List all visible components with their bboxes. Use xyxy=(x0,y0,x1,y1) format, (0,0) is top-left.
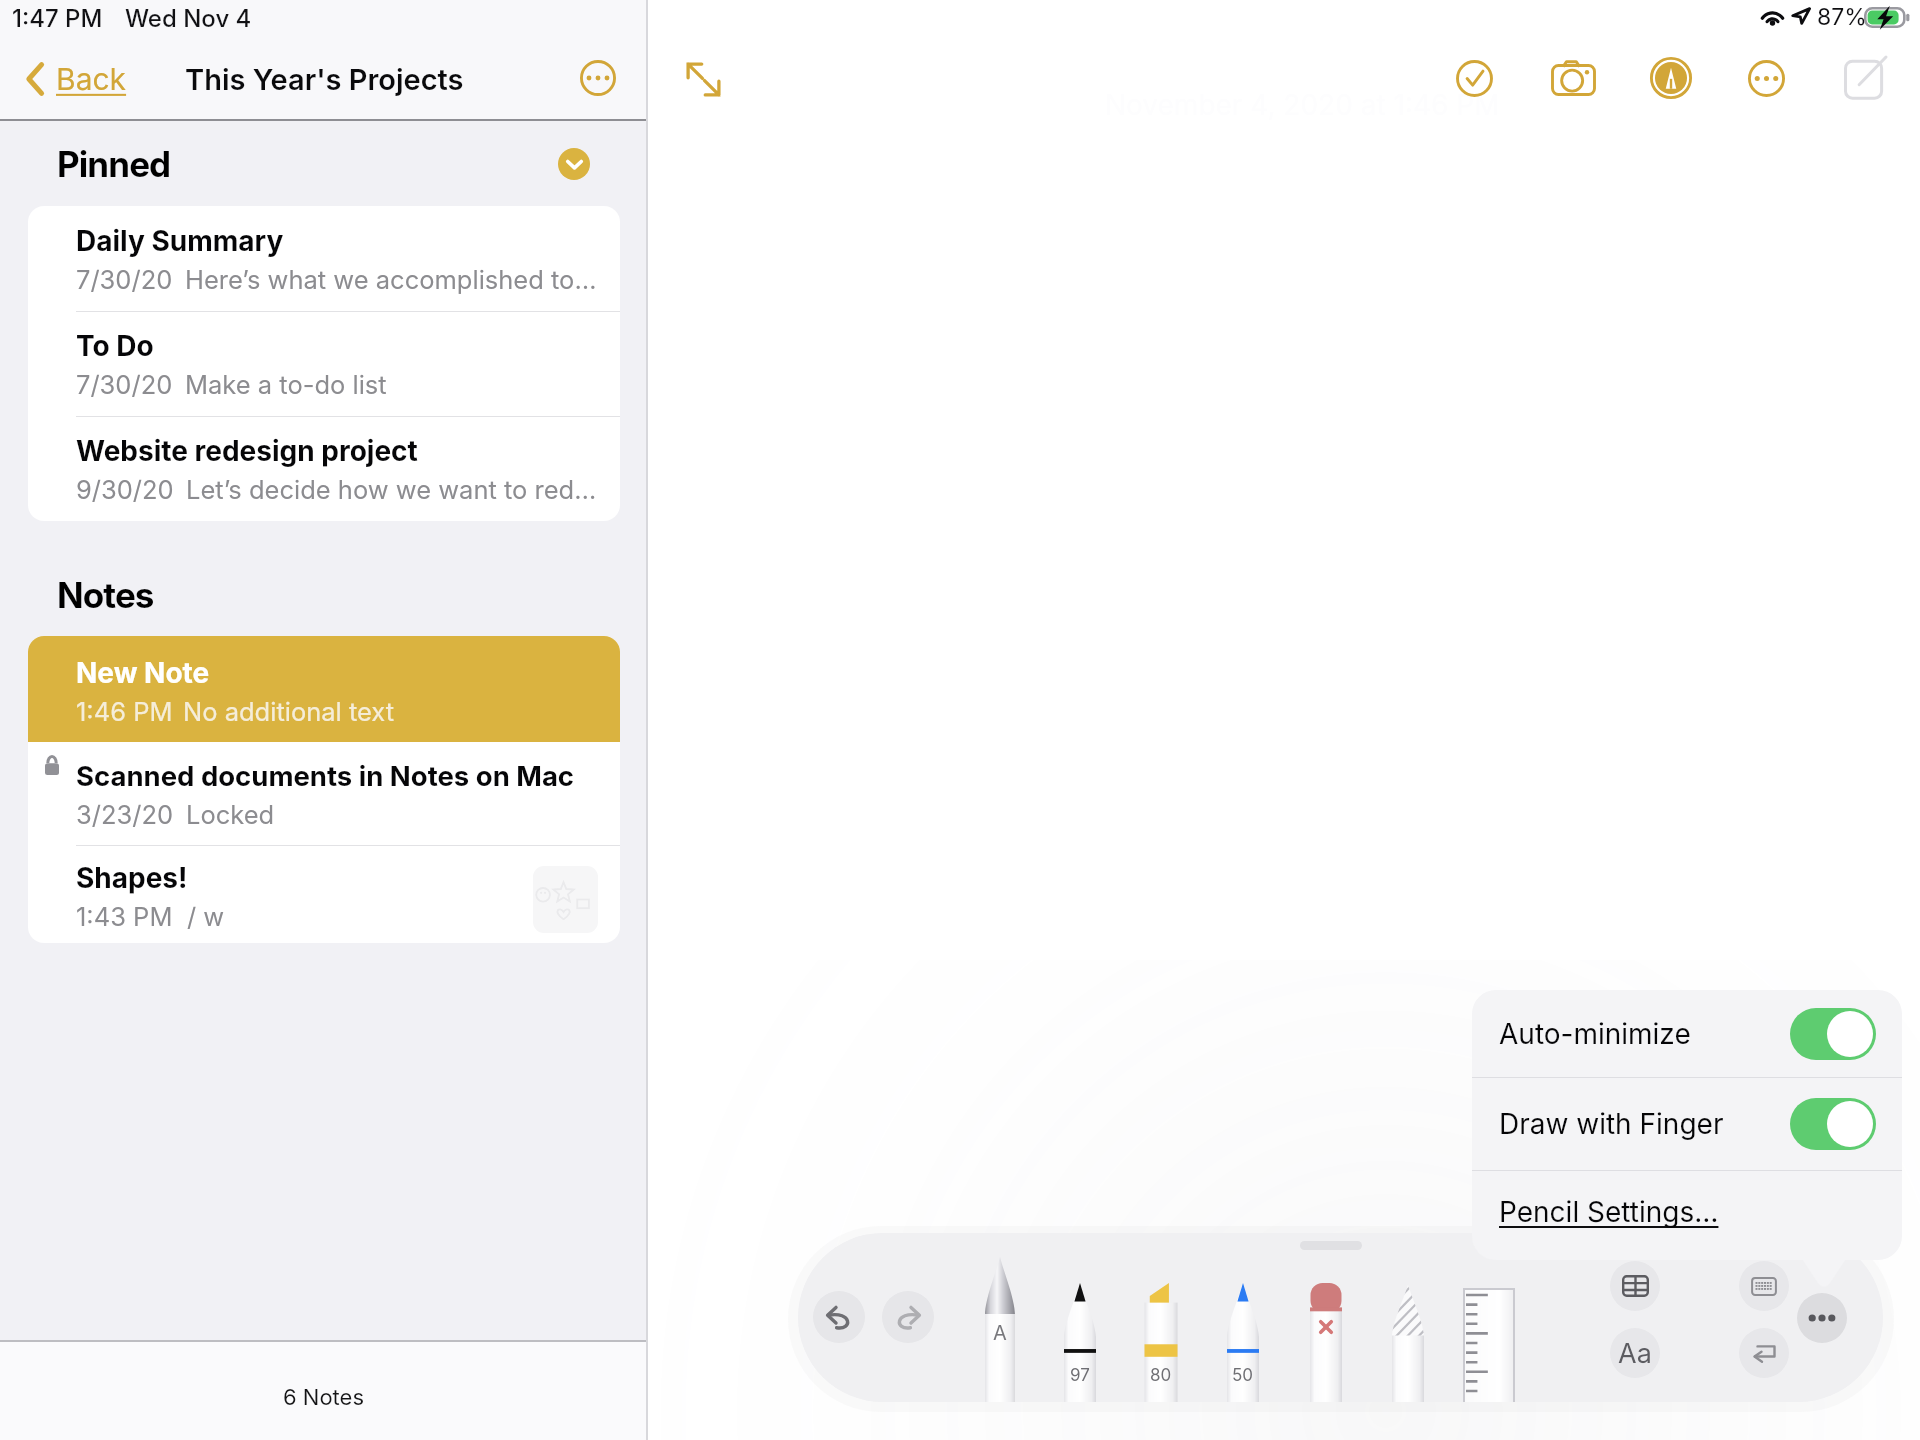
staticText: 6 Notes xyxy=(283,1384,365,1411)
staticText: This Year's Projects xyxy=(185,62,464,97)
button[interactable]: Pencil tool xyxy=(977,1257,1023,1402)
button[interactable]: Undo xyxy=(813,1291,865,1343)
staticText: 7/30/20 xyxy=(76,264,173,295)
staticText: 9/30/20 xyxy=(76,474,174,505)
staticText: 1:46 PM xyxy=(76,696,173,727)
staticText: 3/23/20 xyxy=(76,799,174,830)
staticText: / w xyxy=(187,901,225,932)
staticText: Website redesign project xyxy=(76,434,418,468)
staticText: Let’s decide how we want to red… xyxy=(186,474,597,505)
staticText: 1:43 PM xyxy=(76,901,173,932)
button[interactable]: Website redesign project xyxy=(28,416,620,521)
button[interactable]: New Note xyxy=(28,636,620,742)
staticText: November 4, 2020 at 1:46 PM xyxy=(1105,88,1500,122)
staticText: 97 xyxy=(1070,1365,1090,1386)
staticText: Draw with Finger xyxy=(1499,1107,1724,1141)
button[interactable]: Pen tool xyxy=(1057,1283,1103,1402)
staticText: Make a to-do list xyxy=(185,369,387,400)
staticText: Wed Nov 4 xyxy=(125,4,252,33)
staticText: A xyxy=(993,1321,1007,1345)
button[interactable]: Highlighter tool xyxy=(1138,1283,1184,1402)
button[interactable]: Keyboard xyxy=(1739,1261,1789,1311)
staticText: 1:47 PM xyxy=(12,4,103,33)
staticText: 80 xyxy=(1150,1365,1172,1386)
staticText: New Note xyxy=(76,656,210,690)
button[interactable]: Daily Summary xyxy=(28,206,620,311)
button[interactable]: Insert xyxy=(1739,1328,1789,1378)
button[interactable]: Table xyxy=(1610,1261,1660,1311)
staticText: Locked xyxy=(186,799,275,830)
button[interactable]: Compose xyxy=(1835,48,1895,108)
button[interactable]: Text style xyxy=(1610,1328,1660,1378)
button[interactable]: Back xyxy=(24,54,127,104)
staticText: Shapes! xyxy=(76,861,188,895)
button[interactable]: Camera xyxy=(1543,48,1603,108)
button[interactable]: Lasso tool xyxy=(1385,1285,1431,1402)
button[interactable]: More options xyxy=(574,54,622,102)
button[interactable]: Markup xyxy=(1641,48,1701,108)
staticText: To Do xyxy=(76,329,154,363)
staticText: Back xyxy=(56,61,127,97)
staticText: Pinned xyxy=(57,143,171,185)
button[interactable]: Pencil Settings… xyxy=(1472,1170,1902,1260)
button[interactable]: Shapes! xyxy=(28,845,620,943)
button[interactable]: Collapse Pinned xyxy=(558,148,590,180)
button[interactable]: To Do xyxy=(28,311,620,416)
staticText: Aa xyxy=(1618,1337,1652,1370)
button[interactable]: Draw with Finger xyxy=(1472,1077,1902,1170)
staticText: Scanned documents in Notes on Mac xyxy=(76,759,575,792)
button[interactable]: More xyxy=(1736,48,1796,108)
staticText: No additional text xyxy=(183,696,395,727)
staticText: 50 xyxy=(1232,1365,1254,1386)
staticText: Auto-minimize xyxy=(1499,1017,1691,1051)
button[interactable]: Eraser tool xyxy=(1303,1283,1349,1402)
button[interactable]: Markup options xyxy=(1797,1293,1847,1343)
staticText: Notes xyxy=(57,574,154,616)
staticText: Here’s what we accomplished to… xyxy=(185,264,597,295)
staticText: 87% xyxy=(1817,3,1867,31)
button[interactable]: Expand xyxy=(676,52,731,107)
button[interactable]: Checklist xyxy=(1444,48,1504,108)
staticText: 7/30/20 xyxy=(76,369,173,400)
staticText: Daily Summary xyxy=(76,224,284,258)
button[interactable]: Pen tool xyxy=(1220,1283,1266,1402)
button[interactable]: Scanned documents in Notes on Mac xyxy=(28,742,620,845)
button[interactable]: Auto-minimize xyxy=(1472,990,1902,1077)
button[interactable]: Redo xyxy=(882,1291,934,1343)
staticText: Pencil Settings… xyxy=(1499,1195,1719,1229)
button[interactable]: Ruler xyxy=(1463,1288,1515,1402)
